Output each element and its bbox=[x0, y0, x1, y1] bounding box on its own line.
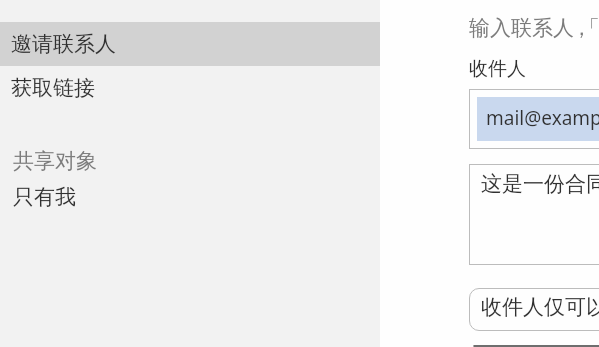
staticText: ， bbox=[571, 15, 592, 41]
button[interactable]: 发送邀请 bbox=[473, 345, 599, 347]
staticText: 收件人 bbox=[469, 57, 526, 81]
staticText: 这是一份合同 bbox=[481, 171, 599, 197]
button[interactable]: 邀请联系人 bbox=[0, 22, 380, 66]
button[interactable]: 收件人输入框 bbox=[469, 89, 599, 149]
staticText: 输入联系人 bbox=[469, 15, 574, 41]
staticText: 收件人仅可以查看 bbox=[481, 294, 599, 320]
staticText: mail@example.com bbox=[486, 105, 599, 131]
button[interactable]: 收件人仅可以查看 bbox=[469, 288, 599, 331]
staticText: 「 bbox=[579, 15, 599, 41]
staticText: 只有我 bbox=[13, 184, 76, 210]
button[interactable]: 获取链接 bbox=[0, 66, 380, 110]
staticText: 共享对象 bbox=[13, 148, 97, 174]
staticText: 获取链接 bbox=[11, 75, 95, 101]
staticText: 邀请联系人 bbox=[11, 31, 116, 57]
button[interactable]: 留言输入框 bbox=[469, 164, 599, 265]
button[interactable]: 只有我 bbox=[0, 179, 380, 215]
